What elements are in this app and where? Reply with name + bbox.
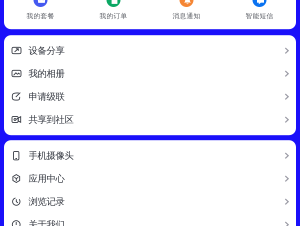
staticText: 申请级联 bbox=[28, 91, 64, 102]
button[interactable]: 应用中心 bbox=[4, 167, 296, 190]
staticText: 我的套餐 bbox=[26, 12, 54, 20]
staticText: 消息通知 bbox=[172, 12, 200, 20]
button[interactable]: 设备分享 bbox=[4, 39, 296, 62]
button[interactable]: 手机摄像头 bbox=[4, 144, 296, 167]
staticText: 设备分享 bbox=[28, 45, 64, 56]
staticText: 我的订单 bbox=[99, 12, 127, 20]
button[interactable]: 消息通知 bbox=[150, 0, 223, 20]
button[interactable]: 浏览记录 bbox=[4, 190, 296, 213]
staticText: 应用中心 bbox=[28, 173, 64, 184]
button[interactable]: 智能短信 bbox=[223, 0, 296, 20]
button[interactable]: 我的订单 bbox=[77, 0, 150, 20]
staticText: 智能短信 bbox=[245, 12, 273, 20]
button[interactable]: 我的套餐 bbox=[4, 0, 77, 20]
staticText: 浏览记录 bbox=[28, 196, 64, 207]
staticText: 手机摄像头 bbox=[28, 150, 73, 161]
staticText: 我的相册 bbox=[28, 68, 64, 79]
button[interactable]: 共享到社区 bbox=[4, 108, 296, 131]
button[interactable]: 我的相册 bbox=[4, 62, 296, 85]
button[interactable]: 申请级联 bbox=[4, 85, 296, 108]
button[interactable]: 关于我们 bbox=[4, 213, 296, 226]
staticText: 关于我们 bbox=[28, 219, 64, 226]
staticText: 共享到社区 bbox=[28, 114, 73, 125]
